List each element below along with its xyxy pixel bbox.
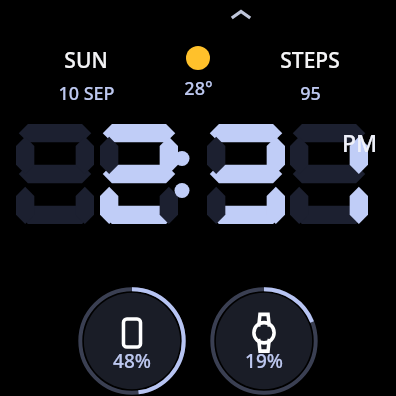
button[interactable]: PM	[0, 120, 396, 270]
staticText: SUN	[64, 46, 108, 75]
staticText: PM	[342, 127, 378, 158]
staticText: STEPS	[280, 46, 340, 75]
button[interactable]: Phone battery 48 percent	[77, 286, 187, 396]
staticText: 95	[300, 81, 321, 106]
button[interactable]: Weather	[142, 46, 254, 101]
staticText: 19%	[245, 348, 283, 374]
staticText: 48%	[113, 348, 151, 374]
button[interactable]: Watch battery 19 percent	[209, 286, 319, 396]
button[interactable]: STEPS	[254, 46, 366, 106]
staticText: 10 SEP	[58, 81, 115, 106]
button[interactable]: SUN	[30, 46, 142, 106]
staticText: 28°	[184, 76, 213, 101]
button[interactable]: Expand	[230, 8, 252, 22]
